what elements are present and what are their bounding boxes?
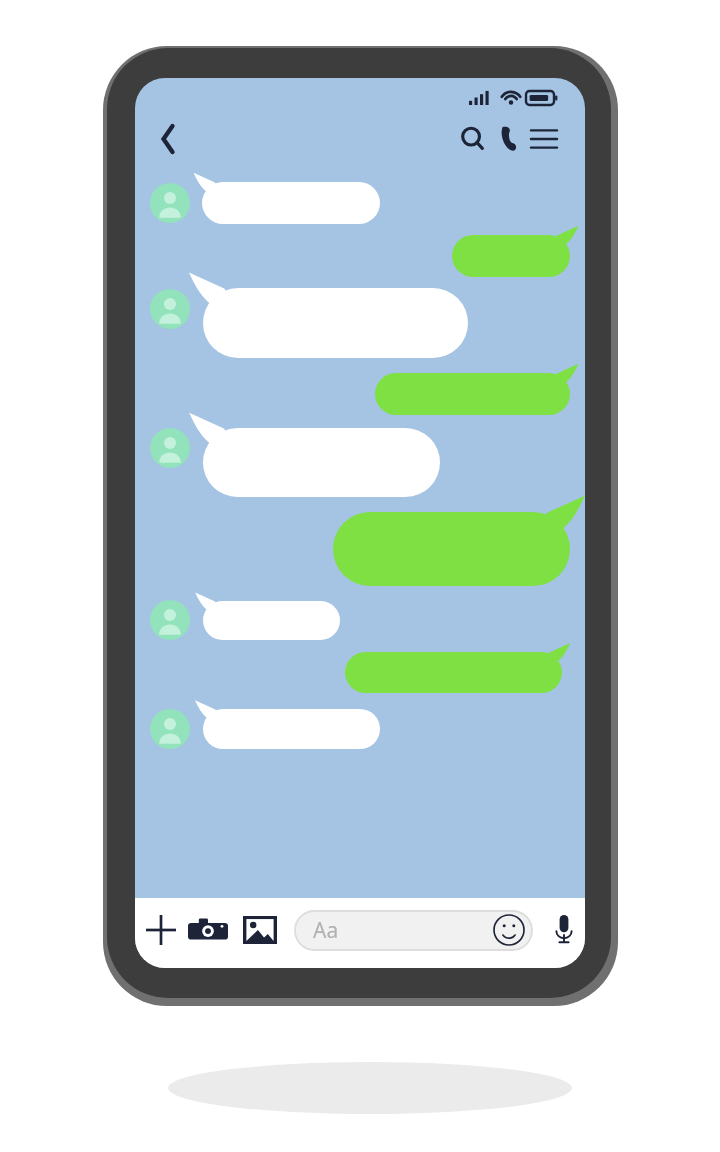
button[interactable]: Add attachment bbox=[139, 908, 183, 952]
button[interactable]: Call bbox=[487, 116, 531, 162]
button[interactable]: Emoji bbox=[489, 908, 531, 952]
button[interactable]: Search bbox=[451, 116, 495, 162]
button[interactable]: Message input bbox=[295, 911, 532, 950]
button[interactable]: Voice message bbox=[543, 908, 585, 952]
button[interactable]: Photo gallery bbox=[238, 908, 282, 952]
button[interactable]: Camera bbox=[186, 908, 230, 952]
button[interactable]: Menu bbox=[522, 116, 566, 162]
staticText: Aa bbox=[313, 916, 339, 945]
button[interactable]: Back bbox=[146, 116, 192, 162]
